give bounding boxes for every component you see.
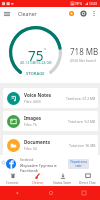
- button[interactable]: Cleaner: [25, 172, 50, 186]
- staticText: Cleaner: [18, 10, 37, 17]
- staticText: Connect: [6, 181, 19, 185]
- staticText: 75: [28, 47, 44, 65]
- staticText: Facebook: [20, 168, 38, 173]
- staticText: Изучайте Группы в: [20, 163, 57, 168]
- staticText: 78 %: [75, 2, 83, 6]
- button[interactable]: Direct Chat: [75, 172, 100, 186]
- staticText: Direct Chat: [79, 181, 96, 185]
- button[interactable]: Back: [0, 186, 34, 200]
- button[interactable]: More options: [89, 7, 99, 20]
- button[interactable]: Status Saver: [50, 172, 75, 186]
- button[interactable]: Home: [34, 186, 67, 200]
- staticText: Documents: [24, 139, 51, 145]
- button[interactable]: Images: [3, 111, 98, 131]
- staticText: Voice Notes: [24, 92, 52, 98]
- button[interactable]: Boost: [65, 7, 77, 20]
- staticText: Total size: 67.2 MB: [66, 96, 96, 101]
- staticText: Files: 4433: [24, 99, 41, 104]
- staticText: Status Saver: [53, 181, 72, 185]
- button[interactable]: Documents: [3, 135, 98, 155]
- staticText: 4534 files found: [70, 58, 96, 63]
- staticText: Images: [24, 115, 41, 121]
- button[interactable]: Recents: [67, 186, 100, 200]
- staticText: 40.13 GB/53.24 GB: [20, 60, 52, 65]
- button[interactable]: Settings: [77, 7, 89, 20]
- button[interactable]: Menu: [0, 7, 14, 20]
- staticText: STORAGE: [26, 71, 45, 77]
- staticText: °: [44, 47, 47, 54]
- staticText: Total size: 96 MB: [69, 143, 96, 148]
- staticText: Total size: 9.2 MB: [68, 119, 96, 124]
- button[interactable]: Перейти на сайт: [68, 159, 89, 169]
- staticText: Files: 76: [24, 122, 37, 127]
- staticText: Cleaner: [32, 181, 44, 185]
- staticText: 12:23: [89, 2, 98, 6]
- staticText: Перейти на сайт: [70, 160, 87, 168]
- staticText: Facebook: [20, 158, 34, 162]
- staticText: 718 MB: [70, 46, 99, 57]
- staticText: Files: 34: [24, 146, 37, 151]
- button[interactable]: Connect: [0, 172, 25, 186]
- button[interactable]: Voice Notes: [3, 88, 98, 108]
